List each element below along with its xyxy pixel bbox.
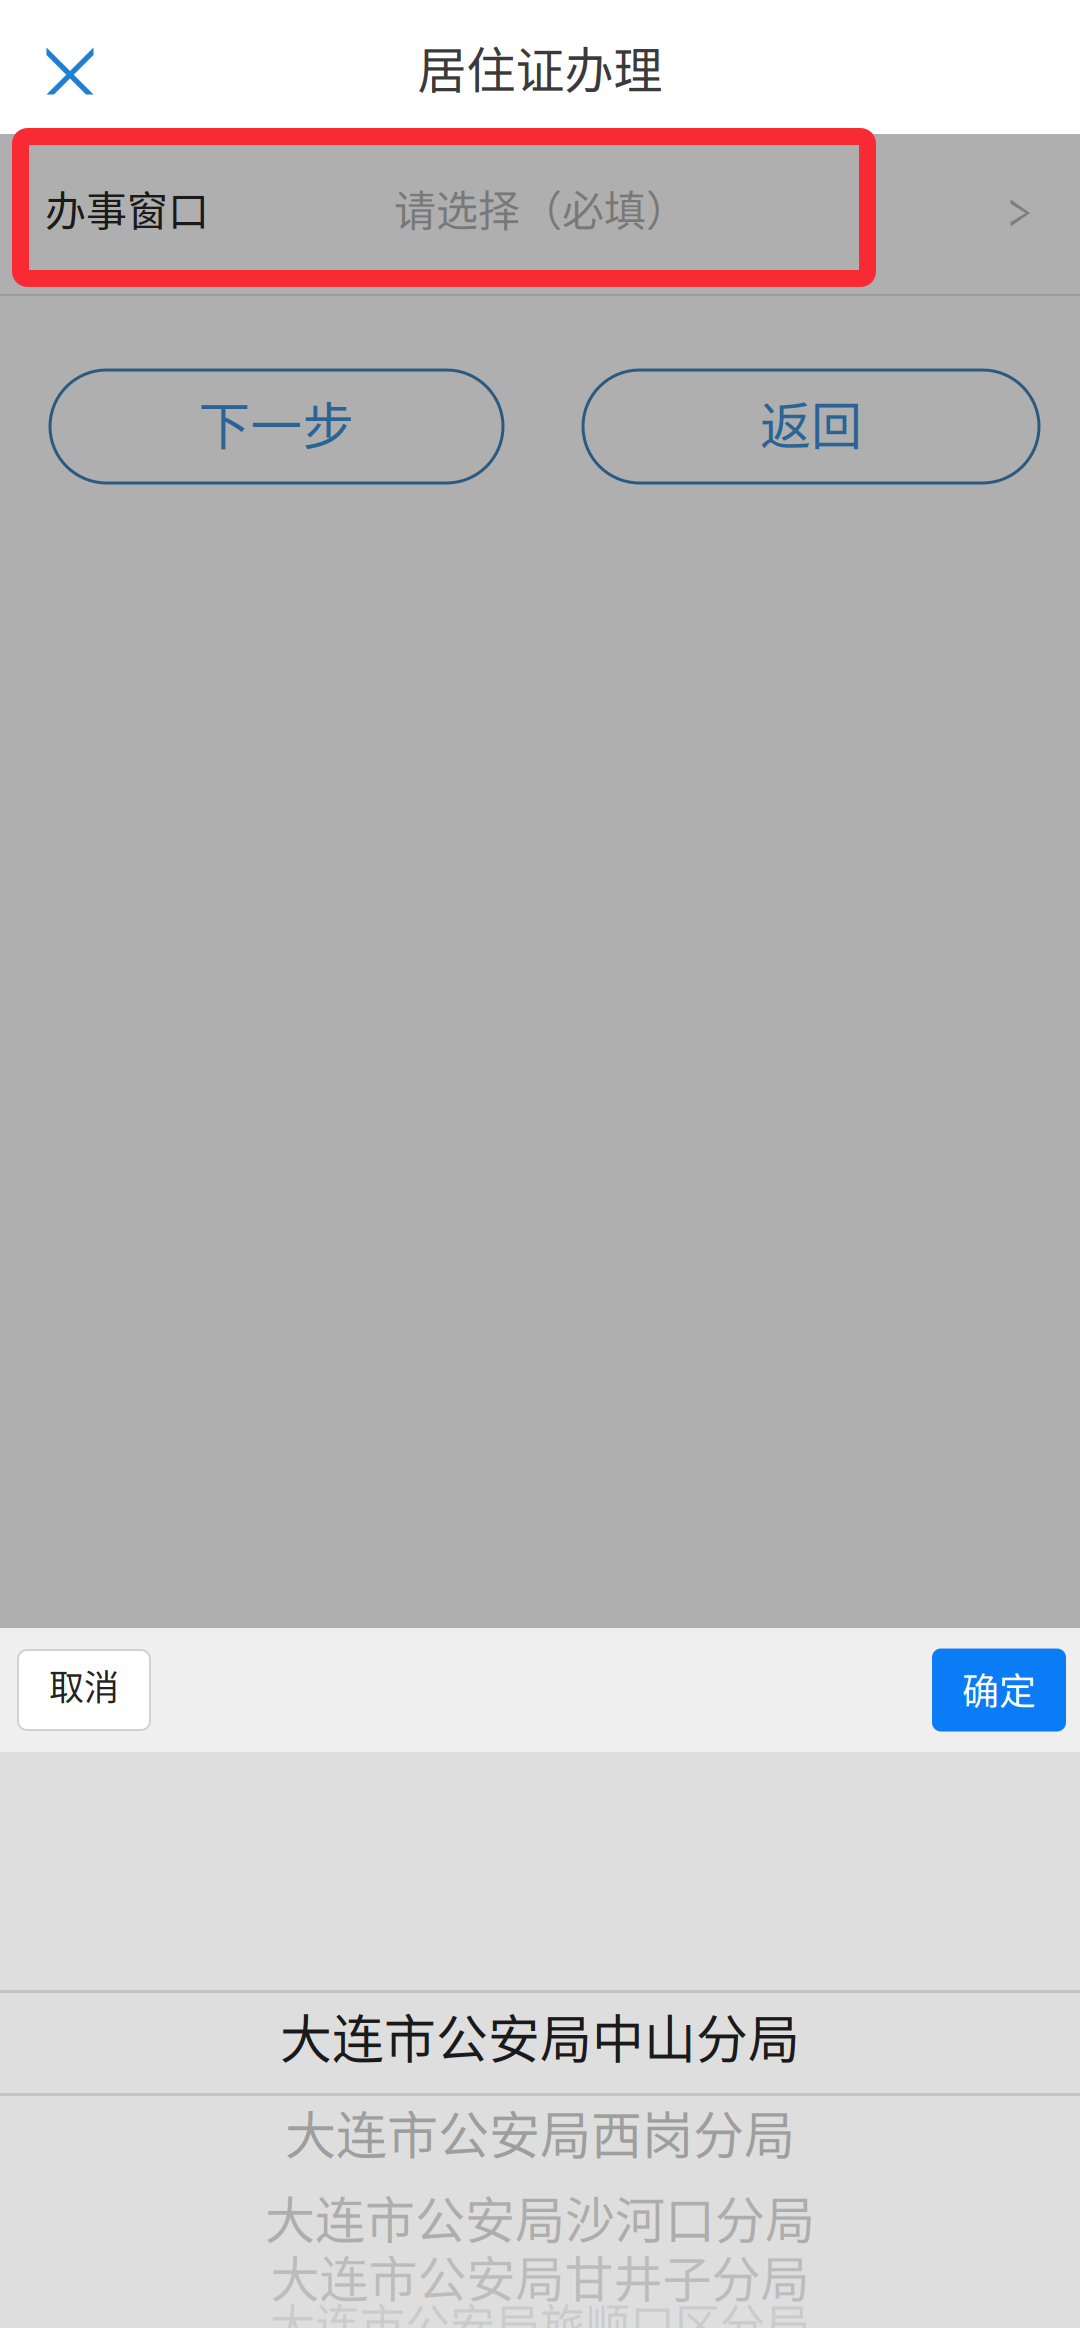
button[interactable]: 确定 [932, 1648, 1066, 1731]
button[interactable]: 大连市公安局沙河口分局 [0, 2188, 1080, 2246]
staticText: 确定 [962, 1662, 1036, 1716]
staticText: 取消 [49, 1660, 119, 1710]
staticText: 大连市公安局中山分局 [280, 1998, 800, 2073]
button[interactable]: 关闭 [0, 0, 138, 139]
button[interactable]: 取消 [18, 1650, 150, 1730]
staticText: 居住证办理 [417, 31, 662, 102]
staticText: 大连市公安局旅顺口区分局 [270, 2290, 810, 2328]
staticText: 大连市公安局西岗分局 [285, 2095, 795, 2169]
button[interactable]: 大连市公安局甘井子分局 [0, 2250, 1080, 2302]
staticText: 大连市公安局甘井子分局 [270, 2240, 809, 2311]
staticText: 返回 [760, 386, 862, 459]
staticText: 请选择（必填） [394, 178, 688, 238]
button[interactable]: 下一步 [50, 370, 503, 483]
button[interactable]: 返回 [583, 370, 1039, 483]
button[interactable]: 大连市公安局中山分局 [0, 2006, 1080, 2066]
staticText: 办事窗口 [45, 178, 209, 238]
button[interactable]: 大连市公安局西岗分局 [0, 2102, 1080, 2162]
button[interactable]: 大连市公安局旅顺口区分局 [0, 2300, 1080, 2328]
staticText: 下一步 [198, 385, 354, 460]
button[interactable]: 办事窗口 [0, 134, 1080, 294]
staticText: 大连市公安局沙河口分局 [265, 2181, 815, 2253]
